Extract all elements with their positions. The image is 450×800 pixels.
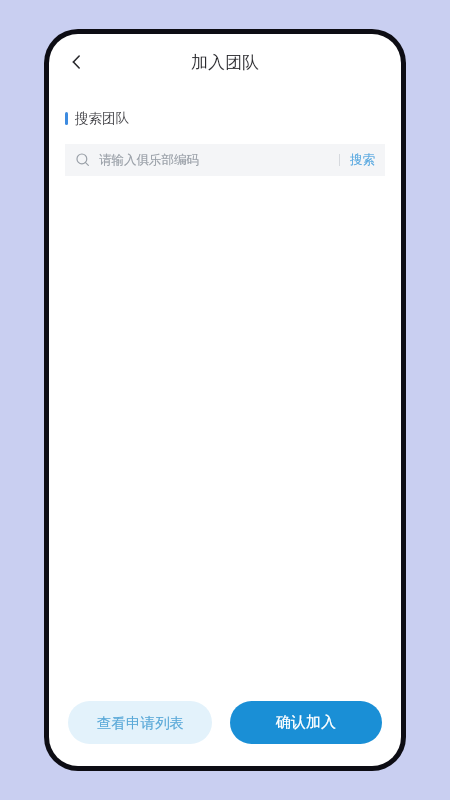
staticText: 搜索 (350, 152, 375, 168)
button[interactable]: 查看申请列表 (68, 701, 212, 744)
button[interactable]: 请输入俱乐部编码 (65, 144, 385, 176)
staticText: 搜索团队 (75, 110, 129, 127)
button[interactable]: 搜索 (340, 152, 385, 168)
button[interactable]: 确认加入 (230, 701, 382, 744)
button[interactable]: Back (57, 42, 97, 82)
staticText: 确认加入 (276, 713, 336, 732)
staticText: 请输入俱乐部编码 (99, 152, 199, 168)
staticText: 加入团队 (191, 52, 259, 73)
staticText: 查看申请列表 (97, 714, 184, 732)
